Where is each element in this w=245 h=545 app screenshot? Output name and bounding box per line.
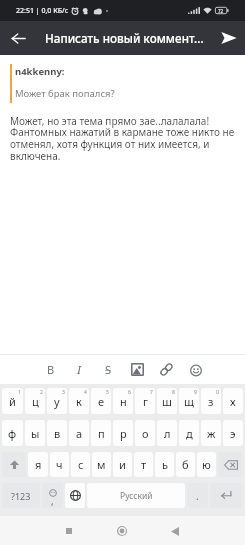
button[interactable]: Bold: [36, 355, 65, 384]
staticText: I: [77, 362, 82, 377]
staticText: S: [105, 362, 112, 377]
button[interactable]: ф: [2, 420, 23, 446]
staticText: с: [78, 457, 84, 472]
button[interactable]: [65, 483, 85, 508]
staticText: ь: [162, 457, 168, 472]
staticText: б: [182, 457, 189, 472]
button[interactable]: ж: [201, 420, 221, 446]
button[interactable]: Русский: [87, 483, 185, 508]
staticText: ?123: [11, 490, 31, 502]
staticText: 5: [106, 389, 109, 396]
staticText: ш: [162, 394, 172, 409]
button[interactable]: г: [135, 388, 155, 414]
staticText: т: [141, 457, 147, 472]
staticText: 4: [84, 389, 87, 396]
button[interactable]: Symbols: [2, 483, 40, 508]
button[interactable]: Backspace: [218, 452, 243, 477]
button[interactable]: Strikethrough: [94, 355, 123, 384]
staticText: 0: [216, 389, 219, 396]
staticText: й: [9, 394, 16, 409]
staticText: 6: [128, 389, 131, 396]
staticText: ф: [8, 426, 17, 441]
button[interactable]: Back: [0, 21, 36, 55]
staticText: я: [35, 457, 42, 472]
button[interactable]: Recents: [55, 517, 83, 545]
button[interactable]: д: [179, 420, 199, 446]
staticText: и: [119, 457, 126, 472]
staticText: B: [47, 362, 55, 377]
button[interactable]: ы: [25, 420, 45, 446]
button[interactable]: о: [135, 420, 155, 446]
staticText: г: [143, 394, 148, 409]
staticText: х: [230, 394, 236, 409]
staticText: п: [98, 426, 105, 441]
button[interactable]: п: [91, 420, 111, 446]
staticText: е: [98, 394, 105, 409]
staticText: ы: [31, 426, 40, 441]
button[interactable]: у: [47, 388, 67, 414]
button[interactable]: л: [157, 420, 177, 446]
button[interactable]: х: [223, 388, 243, 414]
button[interactable]: в: [47, 420, 67, 446]
staticText: .: [196, 489, 199, 503]
staticText: 1: [18, 389, 21, 396]
staticText: 22:51 | 0,0 КБ/с: [16, 6, 69, 16]
staticText: р: [120, 426, 127, 441]
staticText: 7: [150, 389, 153, 396]
staticText: з: [208, 394, 214, 409]
button[interactable]: б: [176, 452, 195, 477]
button[interactable]: а: [69, 420, 89, 446]
staticText: д: [186, 426, 193, 441]
button[interactable]: Send: [212, 21, 245, 55]
button[interactable]: Insert image: [123, 355, 152, 384]
button[interactable]: Comma: [42, 483, 63, 508]
staticText: 2: [40, 389, 43, 396]
button[interactable]: Period: [187, 483, 208, 508]
button[interactable]: и: [113, 452, 132, 477]
staticText: 72: [218, 8, 224, 14]
button[interactable]: е: [91, 388, 111, 414]
staticText: ц: [32, 394, 39, 409]
button[interactable]: р: [113, 420, 133, 446]
staticText: у: [54, 394, 60, 409]
button[interactable]: Insert link: [152, 355, 181, 384]
staticText: к: [76, 394, 82, 409]
staticText: ю: [202, 457, 211, 472]
button[interactable]: Emoji: [181, 355, 210, 384]
button[interactable]: э: [223, 420, 243, 446]
button[interactable]: я: [28, 452, 48, 477]
staticText: ,: [51, 494, 54, 508]
staticText: а: [76, 426, 83, 441]
button[interactable]: Shift: [2, 452, 26, 477]
staticText: n4kkenny:: [15, 65, 65, 78]
button[interactable]: щ: [179, 388, 199, 414]
button[interactable]: ь: [155, 452, 174, 477]
staticText: м: [97, 457, 106, 472]
button[interactable]: з: [201, 388, 221, 414]
staticText: ч: [56, 457, 63, 472]
button[interactable]: к: [69, 388, 89, 414]
staticText: 8: [172, 389, 175, 396]
staticText: Написать новый коммент...: [45, 30, 212, 46]
staticText: Русский: [120, 490, 153, 502]
button[interactable]: Back: [161, 517, 189, 545]
staticText: н: [120, 394, 127, 409]
button[interactable]: н: [113, 388, 133, 414]
button[interactable]: с: [71, 452, 90, 477]
staticText: э: [230, 426, 236, 441]
button[interactable]: Home: [108, 517, 136, 545]
staticText: в: [54, 426, 61, 441]
staticText: щ: [184, 394, 194, 409]
button[interactable]: ч: [50, 452, 69, 477]
button[interactable]: ц: [25, 388, 45, 414]
button[interactable]: Enter: [210, 483, 243, 508]
staticText: ж: [207, 426, 216, 441]
button[interactable]: м: [92, 452, 111, 477]
button[interactable]: ю: [197, 452, 216, 477]
button[interactable]: т: [134, 452, 153, 477]
staticText: л: [164, 426, 171, 441]
button[interactable]: й: [2, 388, 23, 414]
button[interactable]: Italic: [65, 355, 94, 384]
button[interactable]: ш: [157, 388, 177, 414]
staticText: 3: [62, 389, 65, 396]
